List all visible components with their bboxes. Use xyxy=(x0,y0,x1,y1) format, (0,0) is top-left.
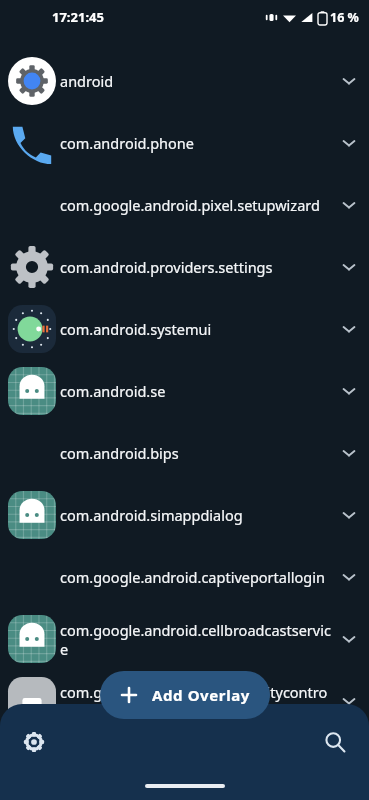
staticText: com.google.android.cellbroadcastservice xyxy=(60,620,331,659)
staticText: com.google.android.captiveportallogin xyxy=(60,567,325,587)
button[interactable]: com.google.android.cellbroadcastservice xyxy=(0,608,369,670)
button[interactable]: Settings xyxy=(12,720,56,764)
button[interactable]: com.android.se xyxy=(0,360,369,422)
staticText: com.google.android.connectivitycontrol xyxy=(60,682,331,721)
button[interactable]: com.android.bips xyxy=(0,422,369,484)
button[interactable]: com.android.phone xyxy=(0,112,369,174)
staticText: com.android.simappdialog xyxy=(60,505,243,525)
button[interactable]: Add Overlay xyxy=(100,671,270,719)
staticText: com.android.bips xyxy=(60,443,179,463)
button[interactable]: Search xyxy=(313,720,357,764)
staticText: 17:21:45 xyxy=(52,8,104,26)
button[interactable]: com.android.systemui xyxy=(0,298,369,360)
button[interactable]: android xyxy=(0,50,369,112)
staticText: com.android.phone xyxy=(60,133,194,153)
button[interactable]: com.android.simappdialog xyxy=(0,484,369,546)
button[interactable]: com.android.providers.settings xyxy=(0,236,369,298)
button[interactable]: com.google.android.connectivitycontrol xyxy=(0,670,369,732)
staticText: android xyxy=(60,71,114,91)
button[interactable]: com.google.android.pixel.setupwizard xyxy=(0,174,369,236)
staticText: com.google.android.pixel.setupwizard xyxy=(60,195,320,215)
staticText: 16 % xyxy=(330,9,359,26)
staticText: com.android.providers.settings xyxy=(60,257,273,277)
staticText: com.android.systemui xyxy=(60,319,212,339)
staticText: Add Overlay xyxy=(152,685,250,705)
button[interactable]: com.google.android.captiveportallogin xyxy=(0,546,369,608)
staticText: com.android.se xyxy=(60,381,166,401)
